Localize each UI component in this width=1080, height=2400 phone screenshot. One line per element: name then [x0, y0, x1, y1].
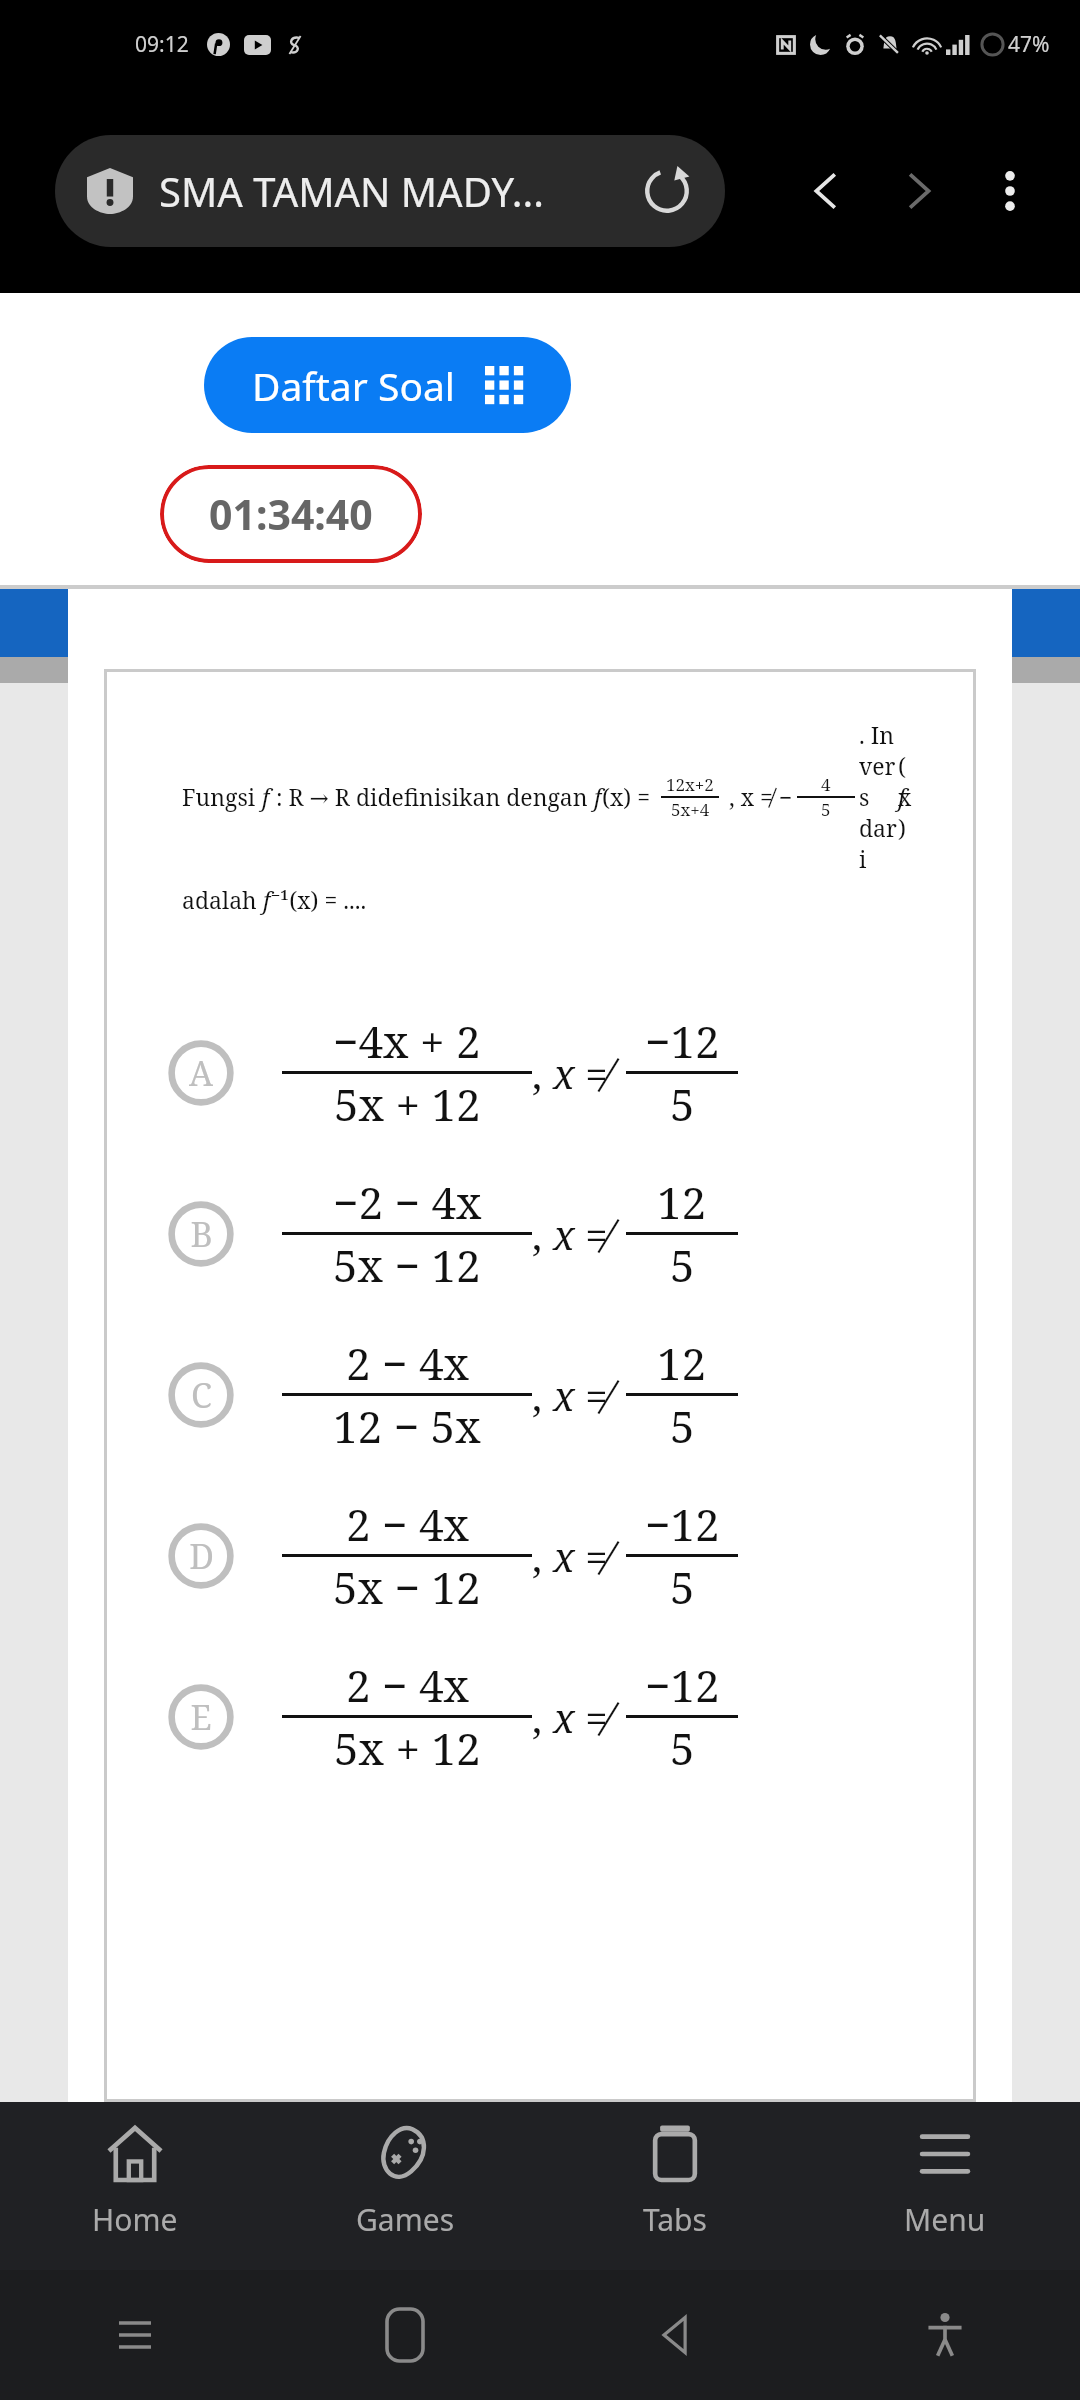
button[interactable]: Recents — [0, 2270, 270, 2400]
staticText: −12 — [645, 1494, 720, 1554]
staticText: , — [532, 1207, 553, 1261]
staticText: Daftar Soal — [252, 359, 455, 412]
staticText: 5x + 12 — [334, 1074, 481, 1134]
staticText: 12x+2 — [666, 773, 714, 796]
staticText: (x) = — [602, 781, 657, 812]
staticText: x ≠ — [553, 1368, 618, 1422]
button[interactable]: SMA TAMAN MADY... — [55, 135, 725, 247]
staticText: A — [189, 1050, 213, 1096]
button[interactable]: Tabs — [540, 2102, 810, 2270]
staticText: 5x − 12 — [333, 1557, 481, 1617]
staticText: 2 − 4x — [346, 1494, 469, 1554]
staticText: 5 — [670, 1557, 695, 1617]
staticText: 2 − 4x — [346, 1655, 469, 1715]
staticText: ⁻¹(x) = .... — [271, 884, 367, 915]
staticText: , — [532, 1529, 553, 1583]
staticText: . Invers dari — [859, 719, 898, 874]
staticText: 47% — [1008, 30, 1050, 59]
staticText: 5x + 12 — [334, 1718, 481, 1778]
staticText: 5 — [821, 798, 831, 821]
staticText: f — [263, 884, 271, 915]
staticText: SMA TAMAN MADY... — [159, 164, 544, 218]
staticText: 01:34:40 — [209, 486, 373, 542]
staticText: −12 — [645, 1655, 720, 1715]
staticText: 5 — [670, 1718, 695, 1778]
button[interactable]: Forward — [872, 145, 964, 237]
staticText: x ≠ — [553, 1046, 618, 1100]
staticText: 12 — [657, 1172, 707, 1232]
staticText: B — [190, 1211, 213, 1257]
staticText: 5x − 12 — [333, 1235, 481, 1295]
button[interactable]: B — [104, 1172, 976, 1295]
button[interactable]: E — [104, 1655, 976, 1778]
button[interactable]: Home — [270, 2270, 540, 2400]
staticText: x ≠ — [553, 1690, 618, 1744]
staticText: 5 — [670, 1235, 695, 1295]
staticText: 2 − 4x — [346, 1333, 469, 1393]
staticText: , — [532, 1046, 553, 1100]
staticText: adalah — [182, 884, 263, 915]
button[interactable]: Games — [270, 2102, 540, 2270]
staticText: , — [532, 1690, 553, 1744]
staticText: , — [532, 1368, 553, 1422]
button[interactable]: More options — [964, 145, 1056, 237]
button[interactable]: Daftar Soal — [204, 337, 571, 433]
staticText: −4x + 2 — [333, 1011, 481, 1071]
staticText: E — [190, 1694, 212, 1740]
staticText: 5 — [670, 1074, 695, 1134]
button[interactable]: Home — [0, 2102, 270, 2270]
staticText: Menu — [904, 2199, 986, 2240]
button[interactable]: Back — [540, 2270, 810, 2400]
staticText: Home — [92, 2199, 178, 2240]
button[interactable]: A — [104, 1011, 976, 1134]
other: Reload — [641, 165, 693, 217]
staticText: x ≠ — [553, 1207, 618, 1261]
staticText: : R → R didefinisikan dengan — [270, 781, 594, 812]
staticText: Games — [356, 2199, 455, 2240]
button[interactable]: 01:34:40 — [160, 465, 422, 563]
staticText: 12 − 5x — [333, 1396, 481, 1456]
staticText: 5x+4 — [671, 798, 710, 821]
button[interactable]: Accessibility — [810, 2270, 1080, 2400]
staticText: D — [189, 1533, 214, 1579]
staticText: C — [191, 1372, 212, 1418]
staticText: Fungsi — [182, 781, 262, 812]
staticText: 12 — [657, 1333, 707, 1393]
staticText: 4 — [821, 773, 831, 796]
staticText: 09:12 — [135, 30, 189, 59]
button[interactable]: C — [104, 1333, 976, 1456]
button[interactable]: D — [104, 1494, 976, 1617]
staticText: 5 — [670, 1396, 695, 1456]
staticText: −2 − 4x — [333, 1172, 482, 1232]
staticText: x ≠ — [553, 1529, 618, 1583]
button[interactable]: Menu — [810, 2102, 1080, 2270]
staticText: −12 — [645, 1011, 720, 1071]
staticText: f — [262, 781, 270, 812]
staticText: f — [594, 781, 602, 812]
staticText: Tabs — [643, 2199, 707, 2240]
button[interactable]: Back — [780, 145, 872, 237]
staticText: , x ≠ − — [723, 781, 793, 812]
